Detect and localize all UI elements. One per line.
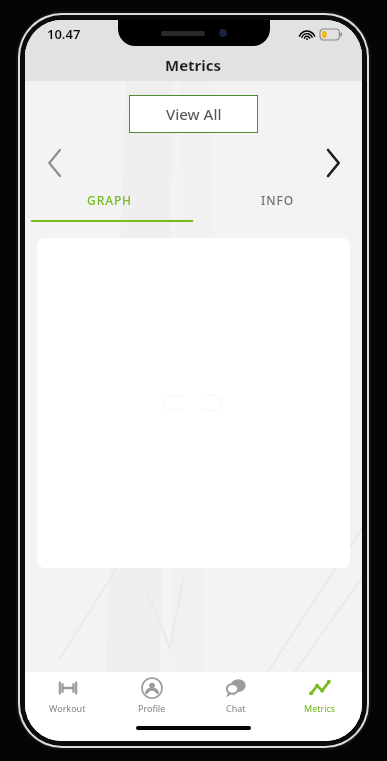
button[interactable]: View All bbox=[129, 95, 258, 133]
staticText: Metrics bbox=[304, 702, 336, 714]
staticText: Workout bbox=[49, 702, 86, 714]
staticText: Metrics bbox=[165, 55, 222, 75]
button[interactable]: Previous bbox=[37, 146, 71, 180]
staticText: Profile bbox=[138, 702, 166, 714]
staticText: View All bbox=[166, 104, 222, 124]
button[interactable]: Chat bbox=[194, 677, 278, 714]
staticText: GRAPH bbox=[87, 192, 132, 208]
staticText: 10.47 bbox=[47, 25, 81, 43]
staticText: Chat bbox=[226, 702, 246, 714]
button[interactable]: GRAPH bbox=[25, 187, 193, 213]
button[interactable]: Metrics bbox=[278, 677, 362, 714]
button[interactable]: Profile bbox=[110, 677, 194, 714]
staticText: INFO bbox=[261, 192, 294, 208]
button[interactable]: Next bbox=[316, 146, 350, 180]
button[interactable]: Workout bbox=[25, 677, 110, 714]
button[interactable]: INFO bbox=[193, 187, 362, 213]
